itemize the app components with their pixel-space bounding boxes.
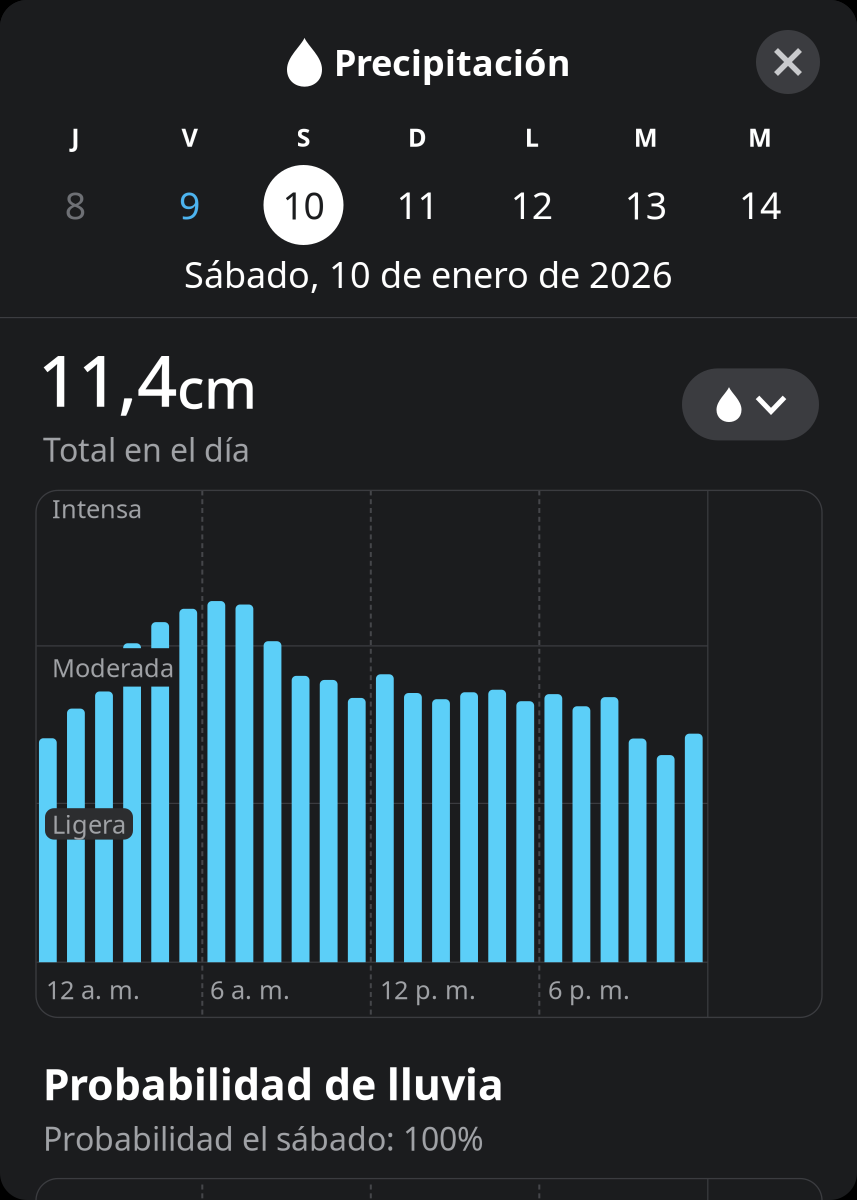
staticText: 6 a. m. [210, 973, 290, 1006]
staticText: J [71, 120, 79, 154]
button[interactable]: L [475, 117, 589, 257]
staticText: Precipitación [334, 38, 570, 86]
staticText: M [634, 120, 658, 154]
staticText: cm [177, 350, 257, 424]
staticText: Total en el día [43, 428, 250, 471]
button[interactable]: M [703, 117, 817, 257]
button[interactable]: M [589, 117, 703, 257]
staticText: 14 [739, 180, 781, 230]
staticText: 12 a. m. [46, 973, 140, 1006]
staticText: Sábado, 10 de enero de 2026 [184, 250, 673, 298]
staticText: Probabilidad el sábado: 100% [43, 1117, 484, 1160]
staticText: 12 p. m. [380, 973, 476, 1006]
button[interactable]: J [18, 117, 132, 257]
staticText: Intensa [52, 492, 142, 525]
staticText: Moderada [52, 651, 174, 684]
staticText: S [296, 120, 310, 154]
staticText: D [408, 120, 427, 154]
staticText: Probabilidad de lluvia [43, 1055, 504, 1112]
staticText: M [748, 120, 772, 154]
button[interactable]: Cambiar unidades [682, 368, 819, 440]
staticText: 10 [282, 180, 324, 230]
staticText: V [181, 120, 197, 154]
button[interactable]: V [132, 117, 246, 257]
staticText: 8 [65, 180, 86, 230]
button[interactable]: S [246, 117, 360, 257]
staticText: 9 [179, 180, 200, 230]
staticText: 6 p. m. [548, 973, 630, 1006]
button[interactable]: D [361, 117, 475, 257]
staticText: 11 [397, 180, 439, 230]
staticText: 13 [625, 180, 667, 230]
button[interactable]: Cerrar [756, 30, 820, 94]
staticText: L [525, 120, 539, 154]
staticText: Ligera [52, 807, 126, 841]
staticText: 12 [511, 180, 553, 230]
staticText: 11,4 [38, 332, 177, 426]
